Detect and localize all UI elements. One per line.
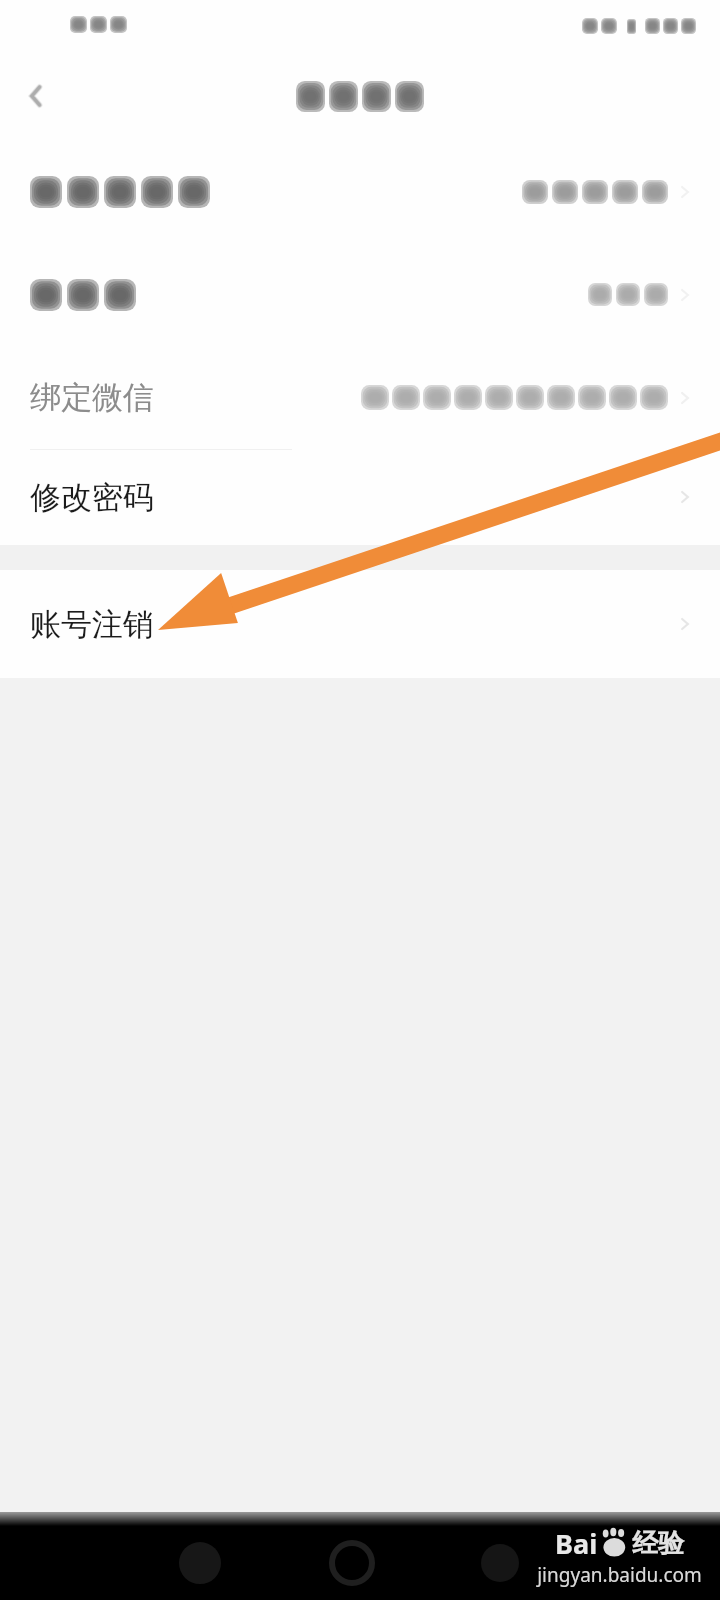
button[interactable]: 绑定微信 — [0, 346, 720, 449]
staticText: 账号注销 — [30, 605, 154, 644]
button[interactable]: 账号注销 — [0, 570, 720, 678]
button[interactable] — [0, 140, 720, 243]
staticText: 经验 — [632, 1527, 684, 1560]
button[interactable] — [0, 243, 720, 346]
button[interactable]: 修改密码 — [0, 449, 720, 545]
button[interactable]: Back — [0, 60, 72, 132]
staticText: 绑定微信 — [30, 378, 154, 417]
staticText: Bai — [555, 1525, 598, 1562]
staticText: jingyan.baidu.com — [537, 1562, 702, 1588]
staticText: 修改密码 — [30, 478, 154, 517]
